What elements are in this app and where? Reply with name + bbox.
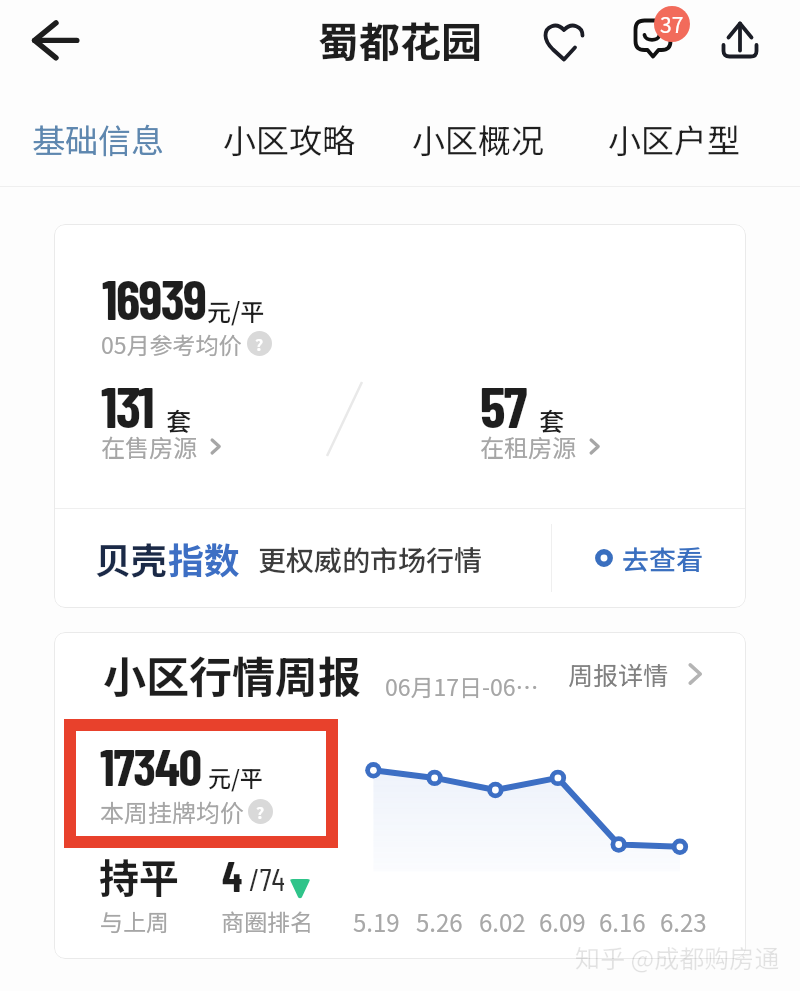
staticText: 更权威的市场行情 (258, 539, 483, 580)
staticText: 周报详情 (568, 656, 669, 692)
staticText: 商圈排名 (221, 904, 313, 937)
staticText: 5.19 (353, 904, 400, 934)
staticText: 小区攻略 (223, 115, 355, 163)
button[interactable]: Help (247, 331, 272, 356)
button[interactable]: 贝壳 (95, 508, 551, 608)
staticText: 5.26 (416, 904, 463, 934)
button[interactable]: Back (16, 9, 78, 71)
staticText: 6.02 (479, 904, 526, 934)
staticText: 17340 (100, 734, 201, 796)
button[interactable]: 基础信息 (26, 108, 169, 170)
staticText: 与上周 (100, 904, 169, 937)
staticText: 小区户型 (608, 115, 740, 163)
staticText: 57 (480, 370, 526, 440)
staticText: ? (255, 332, 264, 355)
button[interactable]: Messages (621, 6, 685, 70)
button[interactable]: Share (708, 9, 772, 73)
button[interactable]: 57 (480, 370, 710, 464)
staticText: 持平 (99, 847, 179, 905)
staticText: 6.23 (660, 904, 707, 934)
staticText: 在租房源 (480, 429, 576, 464)
button[interactable]: 小区户型 (602, 108, 745, 170)
button[interactable]: Favorite (532, 10, 596, 74)
staticText: 小区行情周报 (103, 643, 361, 705)
staticText: 去查看 (622, 539, 703, 578)
staticText: ? (256, 800, 265, 823)
staticText: 6.16 (599, 904, 646, 934)
staticText: 6.09 (539, 904, 586, 934)
staticText: 元/平 (207, 293, 265, 328)
button[interactable]: 小区攻略 (217, 108, 360, 170)
staticText: 本周挂牌均价 (100, 794, 244, 829)
staticText: 蜀都花园 (318, 9, 482, 68)
staticText: 套 (166, 402, 192, 438)
staticText: 16939 (102, 265, 206, 331)
button[interactable]: Help (248, 799, 273, 824)
staticText: 元/平 (208, 760, 263, 793)
staticText: 基础信息 (32, 115, 164, 163)
staticText: 4 (222, 850, 243, 900)
staticText: 131 (101, 370, 153, 440)
staticText: 在售房源 (101, 429, 197, 464)
staticText: 37 (660, 9, 684, 39)
staticText: 指数 (168, 532, 241, 584)
staticText: 05月参考均价 (101, 327, 242, 360)
staticText: 贝壳 (95, 532, 168, 584)
button[interactable]: 去查看 (552, 508, 746, 608)
button[interactable]: 周报详情 (568, 647, 728, 701)
staticText: 小区概况 (412, 115, 544, 163)
button[interactable]: 131 (101, 370, 331, 464)
button[interactable]: 小区概况 (406, 108, 549, 170)
staticText: /74 (249, 859, 285, 897)
staticText: 06月17日-06… (385, 669, 539, 702)
staticText: 知乎 @成都购房通 (575, 939, 780, 975)
staticText: 套 (539, 402, 565, 438)
